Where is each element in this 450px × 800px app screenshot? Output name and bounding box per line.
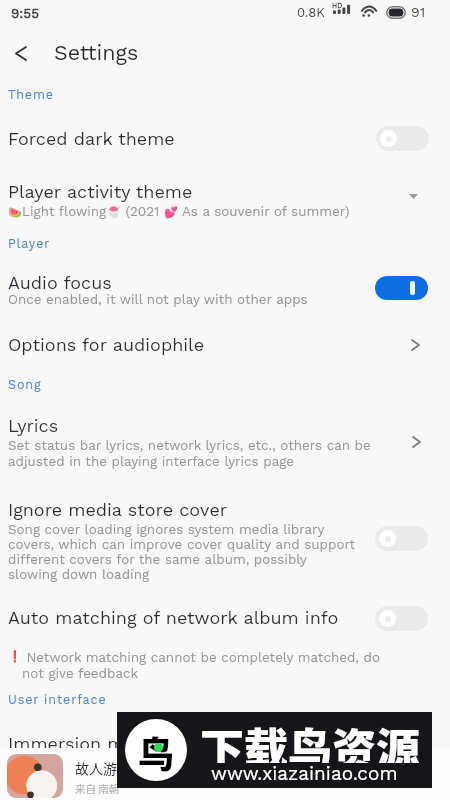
staticText: 9:55	[11, 5, 40, 21]
button[interactable]: Audio focus on	[375, 276, 428, 300]
staticText: Player activity theme	[8, 181, 193, 202]
staticText: HD	[332, 1, 343, 9]
button[interactable]: Forced dark theme toggle	[376, 126, 429, 151]
staticText: Light flowing	[22, 204, 107, 220]
button[interactable]: Auto matching toggle	[375, 606, 428, 631]
staticText: Network matching cannot be completely ma…	[22, 650, 380, 681]
button[interactable]: Forced dark theme	[0, 123, 450, 154]
button[interactable]: Ignore media store cover	[0, 499, 450, 585]
staticText: Song	[8, 377, 42, 392]
staticText: Auto matching of network album info	[8, 607, 339, 628]
button[interactable]: Options for audiophile	[0, 329, 450, 360]
staticText: User interface	[8, 692, 107, 707]
staticText: 91	[411, 4, 426, 20]
staticText: 下载鸟资源	[200, 715, 420, 763]
staticText: 🍉	[8, 206, 22, 219]
staticText: (2021	[121, 204, 164, 220]
staticText: 💕	[164, 206, 178, 219]
staticText: Immersion mode	[8, 733, 157, 754]
button[interactable]: Auto matching of network album info	[0, 607, 450, 683]
staticText: Once enabled, it will not play with othe…	[8, 292, 308, 308]
staticText: 0.8K	[297, 5, 325, 20]
button[interactable]: Ignore media store cover toggle	[375, 526, 428, 551]
button[interactable]: Now playing	[0, 748, 450, 800]
button[interactable]: Back	[3, 35, 39, 71]
staticText: ❗	[8, 650, 22, 663]
button[interactable]: Lyrics	[0, 415, 450, 471]
staticText: 🍧	[107, 206, 121, 219]
staticText: Song cover loading ignores system media …	[8, 522, 356, 582]
staticText: 来自 南朝	[75, 781, 120, 796]
staticText: 故人游	[75, 758, 117, 778]
staticText: www.xiazainiao.com	[211, 762, 398, 784]
staticText: Forced dark theme	[8, 128, 376, 149]
staticText: Set status bar lyrics, network lyrics, e…	[8, 438, 371, 469]
staticText: Options for audiophile	[8, 334, 411, 355]
staticText: Settings	[54, 40, 139, 65]
staticText: Theme	[8, 87, 54, 102]
staticText: Audio focus	[8, 272, 112, 293]
staticText: Ignore media store cover	[8, 499, 228, 520]
staticText: 鸟	[138, 726, 175, 778]
staticText: As a souvenir of summer)	[178, 204, 350, 220]
button[interactable]: Audio focus	[0, 272, 450, 312]
staticText: Player	[8, 236, 51, 251]
button[interactable]: Player activity theme	[0, 181, 450, 221]
staticText: Lyrics	[8, 415, 59, 436]
